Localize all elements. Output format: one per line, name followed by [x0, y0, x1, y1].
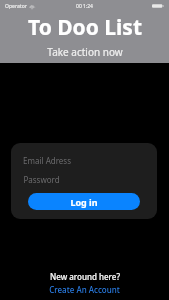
- staticText: Log in: [70, 196, 98, 208]
- button[interactable]: Create An Account: [49, 284, 120, 295]
- staticText: Take action now: [47, 45, 123, 59]
- button[interactable]: Log in: [28, 193, 140, 210]
- button[interactable]: Email Adress: [23, 152, 145, 168]
- staticText: Operator: [5, 3, 27, 10]
- staticText: New around here?: [50, 271, 120, 282]
- other: Wi-Fi signal: [29, 4, 35, 10]
- staticText: Email Adress: [23, 155, 71, 166]
- staticText: 00 1:24: [76, 3, 93, 10]
- staticText: Create An Account: [49, 284, 120, 295]
- staticText: To Doo List: [28, 13, 142, 42]
- staticText: Password: [23, 174, 60, 185]
- other: Battery full: [152, 3, 164, 9]
- button[interactable]: Password: [23, 171, 145, 187]
